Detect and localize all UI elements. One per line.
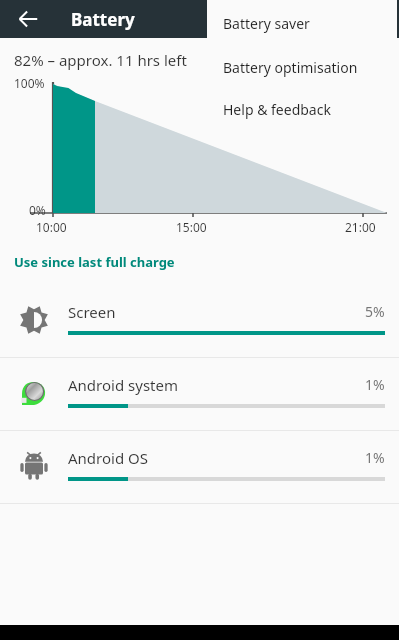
staticText: Use since last full charge [14, 253, 175, 271]
button[interactable]: Screen [0, 285, 399, 357]
button[interactable]: Help & feedback [207, 88, 397, 130]
staticText: Android OS [68, 448, 148, 468]
staticText: Help & feedback [223, 100, 331, 119]
staticText: 0% [29, 202, 46, 218]
staticText: 5% [365, 302, 385, 321]
staticText: 10:00 [36, 219, 67, 235]
staticText: Android system [68, 375, 178, 395]
staticText: 21:00 [345, 219, 376, 235]
button[interactable]: Battery saver [207, 0, 397, 46]
staticText: Battery [71, 8, 135, 31]
staticText: 1% [365, 375, 385, 394]
staticText: 1% [365, 448, 385, 467]
staticText: 82% – approx. 11 hrs left [14, 50, 187, 70]
button[interactable]: Android OS [0, 431, 399, 503]
staticText: 100% [14, 75, 45, 91]
button[interactable]: Android system [0, 358, 399, 430]
staticText: Screen [68, 302, 116, 322]
staticText: Battery saver [223, 14, 310, 33]
staticText: 15:00 [176, 219, 207, 235]
button[interactable]: Battery optimisation [207, 46, 397, 88]
staticText: Battery optimisation [223, 58, 358, 77]
button[interactable]: Back [8, 0, 48, 38]
